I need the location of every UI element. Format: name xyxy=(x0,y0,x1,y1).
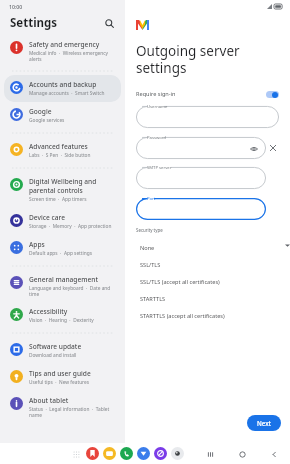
staticText: Safety and emergency xyxy=(29,40,100,49)
staticText: Google xyxy=(29,107,52,116)
staticText: Accessibility xyxy=(29,307,68,316)
button[interactable]: Accounts and backup xyxy=(4,75,121,102)
staticText: Status · Legal information · Tablet name xyxy=(29,406,115,418)
staticText: Labs · S Pen · Side button xyxy=(29,152,91,159)
staticText: SSL/TLS xyxy=(140,261,161,269)
staticText: Vision · Hearing · Dexterity xyxy=(29,317,94,324)
staticText: Default apps · App settings xyxy=(29,250,93,257)
staticText: Security type xyxy=(136,227,163,233)
staticText: Manage accounts · Smart Switch xyxy=(29,90,105,97)
button[interactable]: SMTP server xyxy=(136,167,266,189)
staticText: Next xyxy=(257,419,271,427)
button[interactable]: Phone xyxy=(120,447,133,460)
staticText: Tips and user guide xyxy=(29,369,91,378)
staticText: Screen time · App timers xyxy=(29,196,87,203)
button[interactable]: Next xyxy=(247,415,281,431)
staticText: STARTTLS (accept all certificates) xyxy=(140,312,225,320)
staticText: Accounts and backup xyxy=(29,80,97,89)
staticText: Require sign-in xyxy=(136,90,176,98)
staticText: Useful tips · New features xyxy=(29,379,90,386)
staticText: Google services xyxy=(29,117,65,124)
button[interactable]: STARTTLS (accept all certificates) xyxy=(136,307,282,324)
button[interactable]: All apps xyxy=(70,448,82,460)
button[interactable]: Browser xyxy=(154,447,167,460)
button[interactable]: Device care xyxy=(4,208,121,235)
button[interactable]: Show password xyxy=(249,144,258,153)
staticText: Advanced features xyxy=(29,142,88,151)
button[interactable]: Camera xyxy=(171,447,184,460)
button[interactable]: About tablet xyxy=(4,391,121,423)
staticText: Outgoing server settings xyxy=(136,42,279,77)
button[interactable]: Search settings xyxy=(101,15,117,31)
staticText: Medical info · Wireless emergency alerts xyxy=(29,50,115,62)
staticText: About tablet xyxy=(29,396,69,405)
button[interactable]: Port xyxy=(136,198,266,220)
staticText: General management xyxy=(29,275,98,284)
staticText: SSL/TLS (accept all certificates) xyxy=(140,278,220,286)
button[interactable]: SSL/TLS xyxy=(136,256,282,273)
button[interactable]: Google xyxy=(4,102,121,129)
button[interactable]: Accessibility xyxy=(4,302,121,329)
button[interactable]: General management xyxy=(4,270,121,302)
staticText: None xyxy=(140,244,155,252)
staticText: 10:00 xyxy=(9,3,23,10)
button[interactable]: SSL/TLS (accept all certificates) xyxy=(136,273,282,290)
staticText: Password xyxy=(147,135,166,141)
staticText: STARTTLS xyxy=(140,295,166,303)
staticText: Settings xyxy=(10,15,58,31)
staticText: Software update xyxy=(29,342,82,351)
staticText: Digital Wellbeing and parental controls xyxy=(29,177,115,195)
button[interactable]: Tips and user guide xyxy=(4,364,121,391)
button[interactable]: Digital Wellbeing and parental controls xyxy=(4,172,121,208)
button[interactable]: Back xyxy=(268,448,280,460)
staticText: Port xyxy=(147,196,156,202)
button[interactable]: Username xyxy=(136,106,279,128)
staticText: Apps xyxy=(29,240,45,249)
button[interactable]: Require sign-in xyxy=(136,90,279,98)
staticText: Download and install xyxy=(29,352,77,359)
button[interactable]: None xyxy=(136,239,282,256)
button[interactable]: Opera xyxy=(86,447,99,460)
button[interactable]: Home xyxy=(236,448,248,460)
button[interactable]: Advanced features xyxy=(4,137,121,164)
button[interactable]: Recent apps xyxy=(204,448,216,460)
button[interactable]: STARTTLS xyxy=(136,290,282,307)
button[interactable]: Password xyxy=(136,137,266,159)
button[interactable]: Apps xyxy=(4,235,121,262)
staticText: Device care xyxy=(29,213,65,222)
staticText: Language and keyboard · Date and time xyxy=(29,285,115,297)
button[interactable]: Messages xyxy=(137,447,150,460)
staticText: SMTP server xyxy=(147,165,172,171)
button[interactable]: Files xyxy=(103,447,116,460)
button[interactable]: Safety and emergency xyxy=(4,35,121,67)
staticText: Username xyxy=(147,104,168,110)
button[interactable]: Clear password xyxy=(266,137,279,159)
button[interactable]: Software update xyxy=(4,337,121,364)
staticText: Storage · Memory · App protection xyxy=(29,223,112,230)
